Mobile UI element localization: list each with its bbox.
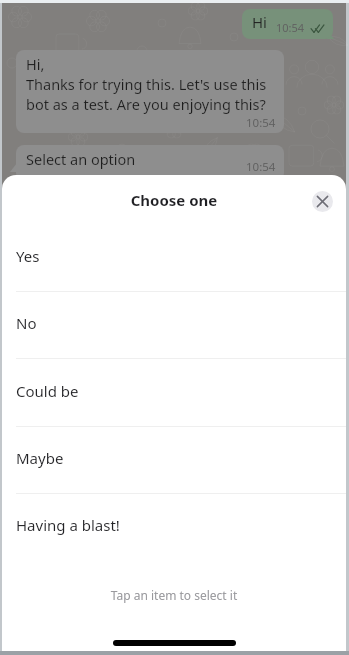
button[interactable]: Having a blast!: [2, 494, 346, 561]
staticText: Maybe: [16, 448, 64, 468]
button[interactable]: Yes: [2, 225, 346, 292]
staticText: Having a blast!: [16, 515, 120, 535]
staticText: 10:54: [276, 20, 305, 35]
staticText: Hi: [252, 12, 267, 32]
button[interactable]: Close: [312, 191, 333, 212]
staticText: 10:54: [246, 159, 276, 175]
button[interactable]: Could be: [2, 360, 346, 427]
button[interactable]: Maybe: [2, 427, 346, 494]
staticText: Select an option: [26, 149, 136, 169]
staticText: Hi, Thanks for trying this. Let's use th…: [26, 54, 267, 114]
staticText: Yes: [16, 246, 40, 266]
staticText: No: [16, 313, 37, 333]
button[interactable]: No: [2, 292, 346, 359]
staticText: Choose one: [2, 190, 346, 210]
staticText: Could be: [16, 381, 79, 401]
staticText: 10:54: [246, 115, 276, 131]
staticText: Tap an item to select it: [2, 587, 346, 603]
